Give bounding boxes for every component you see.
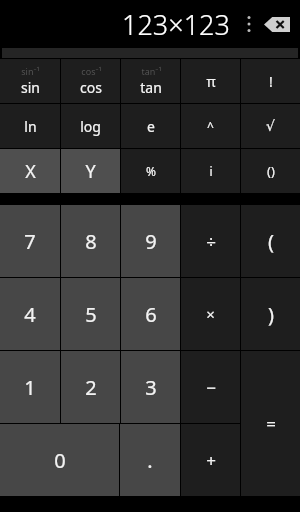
staticText: sin — [21, 78, 40, 97]
staticText: i — [209, 163, 213, 179]
staticText: Y — [85, 159, 96, 184]
button[interactable]: % — [121, 149, 180, 193]
button[interactable]: cos⁻¹ — [61, 59, 120, 103]
staticText: = — [266, 412, 276, 435]
staticText: 4 — [24, 301, 36, 328]
staticText: cos⁻¹ — [81, 65, 102, 77]
staticText: tan — [140, 78, 162, 97]
staticText: π — [206, 72, 216, 91]
staticText: () — [267, 162, 275, 180]
staticText: cos — [80, 78, 102, 97]
button[interactable]: ! — [241, 59, 300, 103]
button[interactable]: 0 — [0, 424, 119, 496]
staticText: + — [206, 449, 216, 472]
staticText: √ — [266, 118, 275, 134]
staticText: 2 — [85, 374, 97, 401]
button[interactable]: 7 — [0, 205, 60, 277]
button[interactable]: ln — [0, 104, 60, 148]
staticText: 1 — [24, 374, 36, 401]
staticText: ln — [24, 117, 37, 136]
staticText: × — [206, 304, 215, 324]
staticText: tan⁻¹ — [141, 65, 162, 77]
button[interactable]: × — [181, 278, 240, 350]
button[interactable]: tan⁻¹ — [121, 59, 180, 103]
button[interactable]: = — [241, 351, 300, 496]
staticText: 3 — [145, 374, 157, 401]
button[interactable]: More options — [242, 7, 256, 41]
button[interactable]: sin⁻¹ — [0, 59, 60, 103]
staticText: 7 — [24, 228, 36, 255]
button[interactable]: − — [181, 351, 240, 423]
button[interactable]: 9 — [121, 205, 180, 277]
button[interactable]: 2 — [61, 351, 120, 423]
staticText: 5 — [85, 301, 97, 328]
button[interactable]: 4 — [0, 278, 60, 350]
button[interactable]: 6 — [121, 278, 180, 350]
staticText: % — [146, 163, 156, 179]
staticText: − — [206, 376, 216, 399]
button[interactable]: Y — [61, 149, 120, 193]
staticText: X — [25, 159, 36, 184]
button[interactable]: 5 — [61, 278, 120, 350]
button[interactable]: ^ — [181, 104, 240, 148]
staticText: 9 — [145, 228, 157, 255]
staticText: 8 — [85, 228, 97, 255]
staticText: ÷ — [206, 230, 216, 253]
staticText: ) — [268, 301, 274, 328]
staticText: ! — [269, 72, 273, 91]
staticText: 6 — [145, 301, 157, 328]
button[interactable]: 8 — [61, 205, 120, 277]
button[interactable]: () — [241, 149, 300, 193]
button[interactable]: π — [181, 59, 240, 103]
button[interactable]: i — [181, 149, 240, 193]
staticText: . — [147, 447, 153, 474]
button[interactable]: Backspace — [262, 7, 292, 41]
button[interactable]: . — [120, 424, 180, 496]
button[interactable]: X — [0, 149, 60, 193]
staticText: sin⁻¹ — [21, 65, 40, 77]
button[interactable]: log — [61, 104, 120, 148]
button[interactable]: + — [181, 424, 240, 496]
button[interactable]: e — [121, 104, 180, 148]
button[interactable]: √ — [241, 104, 300, 148]
button[interactable]: 1 — [0, 351, 60, 423]
button[interactable]: ( — [241, 205, 300, 277]
button[interactable]: 3 — [121, 351, 180, 423]
staticText: e — [147, 117, 155, 136]
staticText: ^ — [207, 118, 214, 134]
staticText: ( — [268, 228, 274, 255]
staticText: 0 — [54, 447, 66, 474]
button[interactable]: ) — [241, 278, 300, 350]
staticText: 123×123 — [122, 6, 230, 43]
button[interactable]: ÷ — [181, 205, 240, 277]
staticText: log — [80, 117, 101, 136]
